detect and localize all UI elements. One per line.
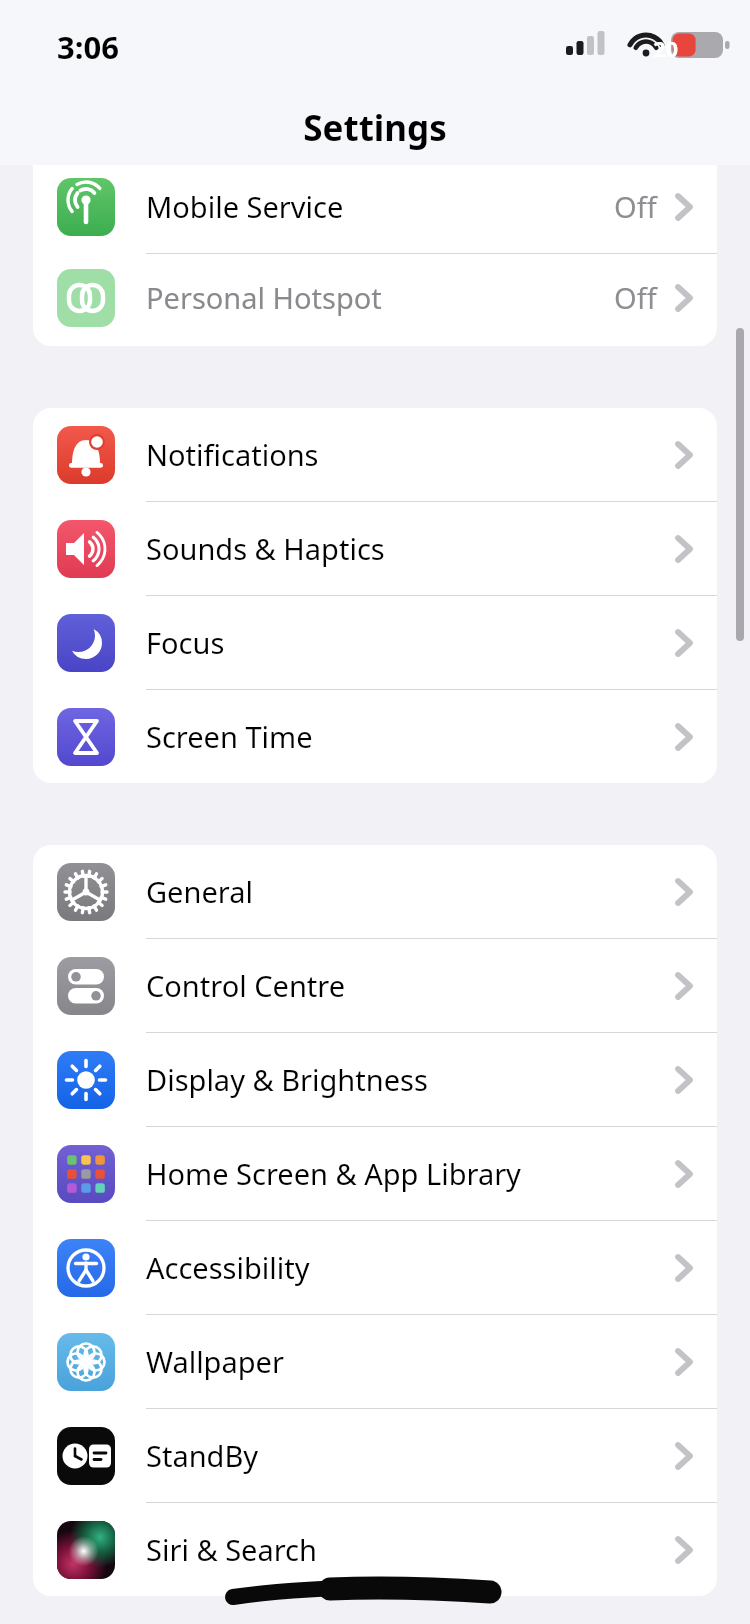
button[interactable]: Focus [33,596,717,689]
other: Open StandBy [675,1440,695,1472]
button[interactable]: Wallpaper [33,1315,717,1408]
other: Open Mobile Service [675,191,695,223]
button[interactable]: Sounds & Haptics [33,502,717,595]
button[interactable]: Siri & Search [33,1503,717,1596]
staticText: Mobile Service [146,187,614,226]
staticText: Settings [0,104,750,152]
other: Open Screen Time [675,721,695,753]
staticText: Wallpaper [146,1342,675,1381]
staticText: Notifications [146,435,675,474]
other: Open Wallpaper [675,1346,695,1378]
staticText: General [146,872,675,911]
staticText: Off [614,278,657,317]
button[interactable]: Home Screen & App Library [33,1127,717,1220]
other: Open Control Centre [675,970,695,1002]
button[interactable]: Display & Brightness [33,1033,717,1126]
other: Open Notifications [675,439,695,471]
staticText: Display & Brightness [146,1060,675,1099]
other: Open Home Screen & App Library [675,1158,695,1190]
staticText: StandBy [146,1436,675,1475]
staticText: Focus [146,623,675,662]
button[interactable]: StandBy [33,1409,717,1502]
button[interactable]: Control Centre [33,939,717,1032]
other: Open Accessibility [675,1252,695,1284]
button[interactable]: Accessibility [33,1221,717,1314]
staticText: Control Centre [146,966,675,1005]
staticText: Off [614,187,657,226]
staticText: 20 [653,33,679,63]
staticText: Sounds & Haptics [146,529,675,568]
other: Open Personal Hotspot [675,282,695,314]
staticText: Accessibility [146,1248,675,1287]
other: Open Focus [675,627,695,659]
staticText: Screen Time [146,717,675,756]
staticText: Home Screen & App Library [146,1154,675,1193]
button[interactable]: Personal Hotspot [33,254,717,341]
button[interactable]: Notifications [33,408,717,501]
other: Open Display & Brightness [675,1064,695,1096]
button[interactable]: General [33,845,717,938]
staticText: 3:06 [57,26,119,68]
other: Open Sounds & Haptics [675,533,695,565]
staticText: Personal Hotspot [146,278,614,317]
button[interactable]: Screen Time [33,690,717,783]
other: Open Siri & Search [675,1534,695,1566]
staticText: Siri & Search [146,1530,675,1569]
button[interactable]: Mobile Service [33,165,717,253]
other: Open General [675,876,695,908]
